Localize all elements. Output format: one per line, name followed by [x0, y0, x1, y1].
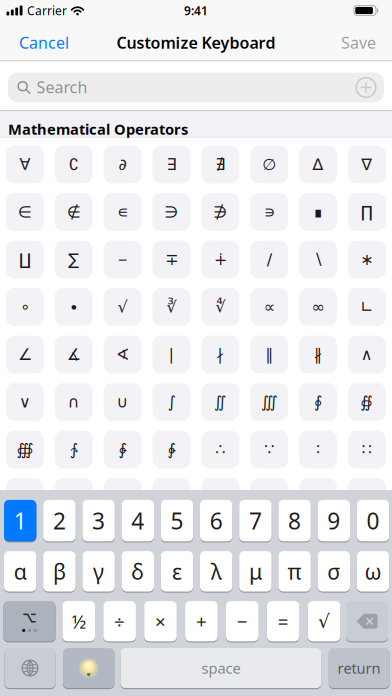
button[interactable]: 7 [239, 500, 272, 541]
button[interactable]: ∽ [250, 478, 288, 516]
button[interactable]: ∇ [348, 146, 386, 183]
button[interactable]: ∸ [6, 478, 44, 516]
button[interactable]: ∬ [201, 383, 239, 421]
button[interactable]: ∾ [299, 478, 337, 516]
button[interactable]: ∖ [299, 241, 337, 278]
button[interactable]: space [120, 648, 321, 688]
button[interactable]: ∺ [104, 478, 141, 516]
button[interactable]: Save [256, 32, 376, 53]
button[interactable]: ∱ [55, 431, 93, 468]
button[interactable]: ∲ [104, 431, 141, 468]
button[interactable]: ∯ [348, 383, 386, 421]
button[interactable]: ∰ [6, 431, 44, 468]
button[interactable]: × [144, 601, 177, 641]
button[interactable]: ∣ [153, 336, 190, 373]
button[interactable]: 8 [278, 500, 311, 541]
button[interactable]: ∛ [153, 288, 190, 326]
button[interactable]: ∷ [348, 431, 386, 468]
button[interactable]: ∧ [348, 336, 386, 373]
button[interactable]: ω [357, 551, 389, 592]
button[interactable]: ∈ [6, 193, 44, 231]
button[interactable]: λ [200, 551, 232, 592]
button[interactable]: ∠ [6, 336, 44, 373]
button[interactable]: ∼ [201, 478, 239, 516]
button[interactable]: ∢ [104, 336, 141, 373]
button[interactable]: 9 [318, 500, 350, 541]
button[interactable]: ∌ [201, 193, 239, 231]
button[interactable]: return [329, 648, 389, 688]
button[interactable]: ∮ [299, 383, 337, 421]
button[interactable]: Cancel [19, 32, 139, 53]
button[interactable]: ∩ [55, 383, 93, 421]
button[interactable]: √ [308, 601, 340, 641]
button[interactable]: ∫ [153, 383, 190, 421]
button[interactable]: ∋ [153, 193, 190, 231]
button[interactable]: ∘ [6, 288, 44, 326]
button[interactable]: Keyboard [63, 648, 114, 688]
button[interactable]: ∹ [55, 478, 93, 516]
button[interactable]: Delete [346, 601, 388, 641]
button[interactable]: 0 [357, 500, 389, 541]
button[interactable]: Search [8, 72, 384, 102]
button[interactable]: ∳ [153, 431, 190, 468]
button[interactable]: ∪ [104, 383, 141, 421]
button[interactable]: ∄ [201, 146, 239, 183]
button[interactable]: Symbols page [3, 601, 56, 641]
button[interactable]: ∻ [153, 478, 190, 516]
button[interactable]: ∶ [299, 431, 337, 468]
button[interactable]: ∟ [348, 288, 386, 326]
button[interactable]: ∙ [55, 288, 93, 326]
button[interactable]: ∝ [250, 288, 288, 326]
button[interactable]: ε [161, 551, 193, 592]
button[interactable]: ∨ [6, 383, 44, 421]
button[interactable]: − [104, 241, 141, 278]
button[interactable]: ∏ [348, 193, 386, 231]
button[interactable]: 1 [4, 500, 36, 541]
button[interactable]: √ [104, 288, 141, 326]
button[interactable]: π [278, 551, 311, 592]
button[interactable]: ∗ [348, 241, 386, 278]
button[interactable]: μ [239, 551, 272, 592]
button[interactable]: − [226, 601, 259, 641]
button[interactable]: ∞ [299, 288, 337, 326]
button[interactable]: ∜ [201, 288, 239, 326]
button[interactable]: β [43, 551, 76, 592]
button[interactable]: ∐ [6, 241, 44, 278]
button[interactable]: ∔ [201, 241, 239, 278]
button[interactable]: ∅ [250, 146, 288, 183]
button[interactable]: ∉ [55, 193, 93, 231]
button[interactable]: ½ [62, 601, 95, 641]
button[interactable]: ∀ [6, 146, 44, 183]
button[interactable]: ∭ [250, 383, 288, 421]
button[interactable]: ∃ [153, 146, 190, 183]
button[interactable]: δ [122, 551, 154, 592]
button[interactable]: γ [82, 551, 115, 592]
button[interactable]: ∍ [250, 193, 288, 231]
button[interactable]: ∎ [299, 193, 337, 231]
button[interactable]: 4 [122, 500, 154, 541]
button[interactable]: ∡ [55, 336, 93, 373]
button[interactable]: ∦ [299, 336, 337, 373]
button[interactable]: ∂ [104, 146, 141, 183]
button[interactable]: 6 [200, 500, 232, 541]
button[interactable]: σ [318, 551, 350, 592]
button[interactable]: Add symbol [355, 77, 376, 98]
button[interactable]: ÷ [103, 601, 136, 641]
button[interactable]: ∆ [299, 146, 337, 183]
button[interactable]: ∊ [104, 193, 141, 231]
button[interactable]: 2 [43, 500, 76, 541]
button[interactable]: ∁ [55, 146, 93, 183]
button[interactable]: ∵ [250, 431, 288, 468]
button[interactable]: = [267, 601, 299, 641]
button[interactable]: 3 [82, 500, 115, 541]
button[interactable]: ∕ [250, 241, 288, 278]
button[interactable]: ∑ [55, 241, 93, 278]
button[interactable]: + [185, 601, 218, 641]
button[interactable]: α [4, 551, 36, 592]
button[interactable]: ∓ [153, 241, 190, 278]
button[interactable]: ∿ [348, 478, 386, 516]
button[interactable]: Next keyboard [4, 648, 56, 688]
button[interactable]: ∥ [250, 336, 288, 373]
button[interactable]: ∤ [201, 336, 239, 373]
button[interactable]: ∴ [201, 431, 239, 468]
